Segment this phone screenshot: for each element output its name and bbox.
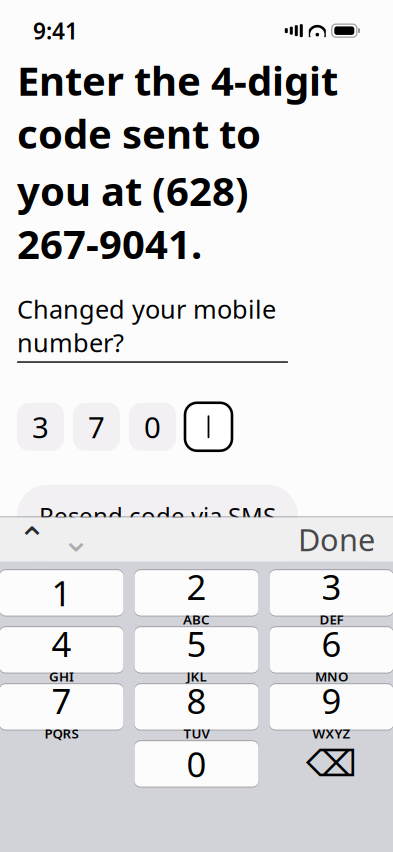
button[interactable]: Digit 3 [17, 403, 64, 451]
staticText: 2 [186, 563, 206, 609]
staticText: 3 [32, 407, 49, 446]
staticText: PQRS [44, 725, 78, 742]
button[interactable]: Delete [269, 740, 393, 787]
staticText: JKL [186, 668, 206, 685]
button[interactable]: 3 [269, 569, 393, 616]
staticText: DEF [319, 611, 343, 628]
staticText: 8 [186, 677, 206, 723]
button[interactable]: 6 [269, 626, 393, 673]
staticText: 6 [321, 620, 341, 666]
staticText: 1 [51, 570, 71, 616]
button[interactable]: 4 [0, 626, 123, 673]
button[interactable]: Fourth digit, editing [185, 403, 232, 451]
staticText: Next [281, 561, 342, 598]
staticText: 7 [88, 407, 105, 446]
staticText: 4 [51, 620, 71, 666]
button[interactable]: 5 [134, 626, 258, 673]
staticText: WXYZ [312, 725, 350, 742]
button[interactable]: 2 [134, 569, 258, 616]
staticText: → [350, 563, 375, 596]
staticText: ABC [183, 611, 210, 628]
button[interactable]: 8 [134, 683, 258, 730]
button[interactable]: Next [280, 555, 376, 605]
staticText: 0 [186, 741, 206, 787]
staticText: 3 [321, 563, 341, 609]
staticText: Resend code via SMS [39, 500, 276, 532]
staticText: MNO [315, 668, 348, 685]
staticText: 7 [51, 677, 71, 723]
button[interactable]: 9 [269, 683, 393, 730]
button[interactable]: Resend code via SMS [17, 485, 298, 547]
staticText: 9:41 [33, 16, 78, 46]
staticText: TUV [183, 725, 209, 742]
button[interactable]: Next field [54, 517, 98, 561]
button[interactable]: 0 [134, 740, 258, 787]
staticText: GHI [49, 668, 74, 685]
staticText: ⌫ [306, 743, 357, 784]
button[interactable]: Back [17, 556, 64, 603]
button[interactable]: 1 [0, 569, 123, 616]
staticText: ⌃ [17, 520, 46, 559]
staticText: you at (628) 267-9041. [17, 164, 249, 270]
staticText: Enter the 4-digit code sent to [17, 54, 338, 160]
button[interactable]: Changed your mobile number? [17, 292, 288, 363]
staticText: 9 [321, 677, 341, 723]
staticText: 0 [144, 407, 161, 446]
staticText: Changed your mobile number? [17, 292, 276, 359]
staticText: Done [298, 519, 375, 560]
button[interactable]: Done [290, 517, 383, 561]
staticText: ⌄ [61, 520, 90, 559]
button[interactable]: Digit 7 [73, 403, 120, 451]
button[interactable]: 7 [0, 683, 123, 730]
staticText: 5 [186, 620, 206, 666]
button[interactable]: Previous field [10, 517, 54, 561]
button[interactable]: Digit 0 [129, 403, 176, 451]
staticText: ← [23, 557, 57, 602]
